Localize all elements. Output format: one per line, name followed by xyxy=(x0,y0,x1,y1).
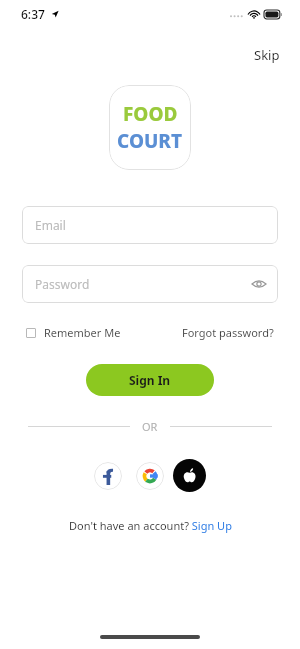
button[interactable]: Sign in with Apple xyxy=(173,459,206,492)
staticText: COURT xyxy=(117,128,183,154)
staticText: Skip xyxy=(254,46,280,64)
button[interactable]: Forgot password? xyxy=(180,322,276,343)
staticText: Forgot password? xyxy=(182,325,274,340)
staticText: Remember Me xyxy=(44,325,121,340)
button[interactable]: Skip xyxy=(250,44,284,66)
button[interactable]: Sign in with Facebook xyxy=(94,462,122,490)
staticText: 6:37 xyxy=(21,6,45,22)
staticText: Password xyxy=(35,276,90,292)
staticText: Email xyxy=(35,217,66,233)
button[interactable]: Don't have an account? Sign Up xyxy=(65,514,236,537)
staticText: FOOD xyxy=(123,101,178,127)
button[interactable]: Password xyxy=(22,265,278,303)
staticText: OR xyxy=(142,419,158,434)
staticText: Don't have an account? Sign Up xyxy=(69,518,232,533)
button[interactable]: Sign in with Google xyxy=(136,462,164,490)
button[interactable]: Sign In xyxy=(86,364,214,396)
button[interactable]: Email xyxy=(22,206,278,244)
button[interactable]: Remember Me xyxy=(24,322,123,343)
staticText: Sign In xyxy=(129,372,171,388)
button[interactable]: Show password xyxy=(250,275,268,293)
